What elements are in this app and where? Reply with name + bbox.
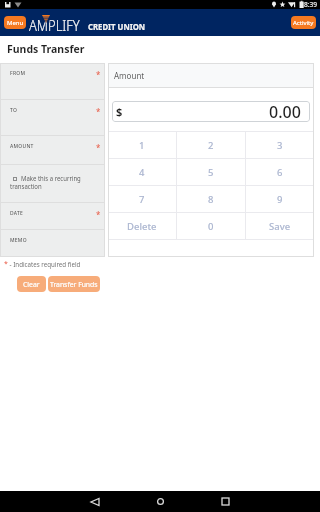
- button[interactable]: Back: [84, 491, 105, 512]
- staticText: *: [96, 106, 101, 117]
- staticText: Funds Transfer: [7, 42, 85, 56]
- button[interactable]: 2: [177, 132, 245, 158]
- staticText: 1: [139, 139, 145, 152]
- staticText: 2: [208, 139, 214, 152]
- staticText: *: [96, 69, 101, 80]
- staticText: DATE: [10, 209, 23, 217]
- button[interactable]: 4: [108, 159, 176, 185]
- staticText: 0: [208, 220, 214, 233]
- staticText: Save: [269, 220, 291, 233]
- staticText: CREDIT UNION: [88, 20, 146, 32]
- button[interactable]: Menu: [4, 16, 26, 29]
- button[interactable]: 5: [177, 159, 245, 185]
- button[interactable]: 9: [246, 186, 314, 212]
- button[interactable]: 0: [177, 213, 245, 239]
- button[interactable]: Transfer Funds: [48, 276, 100, 292]
- button[interactable]: 1: [108, 132, 176, 158]
- staticText: TO: [10, 106, 17, 114]
- button[interactable]: Clear: [17, 276, 46, 292]
- button[interactable]: Recents: [215, 491, 236, 512]
- staticText: 3: [277, 139, 283, 152]
- staticText: Clear: [23, 280, 40, 289]
- button[interactable]: 7: [108, 186, 176, 212]
- staticText: Transfer Funds: [50, 280, 98, 289]
- staticText: 6: [277, 166, 283, 179]
- staticText: - Indicates required field: [8, 260, 81, 268]
- staticText: Menu: [7, 19, 24, 27]
- button[interactable]: TO: [0, 100, 105, 135]
- button[interactable]: 6: [246, 159, 314, 185]
- staticText: 5: [208, 166, 214, 179]
- button[interactable]: DATE: [0, 203, 105, 229]
- staticText: Make this a recurring: [21, 174, 81, 183]
- staticText: Amount: [114, 70, 145, 81]
- staticText: $: [116, 104, 123, 119]
- button[interactable]: AMOUNT: [0, 136, 105, 164]
- staticText: Delete: [127, 220, 157, 233]
- button[interactable]: 8: [177, 186, 245, 212]
- button[interactable]: Home: [150, 491, 171, 512]
- staticText: AMPLIFY: [29, 16, 80, 35]
- staticText: *: [96, 209, 101, 220]
- staticText: 9: [277, 193, 283, 206]
- button[interactable]: Make this a recurring: [0, 165, 105, 202]
- button[interactable]: Save: [246, 213, 314, 239]
- button[interactable]: $: [112, 101, 310, 122]
- staticText: AMOUNT: [10, 142, 34, 150]
- button[interactable]: FROM: [0, 63, 105, 99]
- button[interactable]: Activity: [291, 16, 316, 29]
- staticText: 7: [139, 193, 145, 206]
- staticText: FROM: [10, 69, 26, 77]
- staticText: *: [4, 259, 8, 269]
- staticText: 4: [139, 166, 145, 179]
- staticText: Activity: [293, 19, 314, 27]
- staticText: MEMO: [10, 236, 27, 244]
- button[interactable]: Delete: [108, 213, 176, 239]
- button[interactable]: 3: [246, 132, 314, 158]
- staticText: 8: [208, 193, 214, 206]
- staticText: *: [96, 142, 101, 153]
- staticText: 0.00: [269, 101, 301, 122]
- staticText: transaction: [10, 182, 42, 191]
- staticText: 8:39: [304, 0, 318, 9]
- button[interactable]: MEMO: [0, 230, 105, 257]
